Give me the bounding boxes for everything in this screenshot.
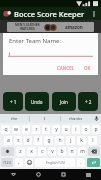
button[interactable]: f	[34, 136, 42, 145]
staticText: amazon	[65, 24, 83, 30]
button[interactable]: o	[82, 125, 90, 134]
button[interactable]: i	[72, 125, 80, 134]
staticText: .	[80, 159, 82, 166]
staticText: k	[80, 137, 83, 144]
staticText: t	[45, 126, 47, 133]
button[interactable]: y	[52, 125, 60, 134]
button[interactable]: s	[14, 136, 22, 145]
button[interactable]: n	[68, 147, 76, 156]
staticText: English (US)	[46, 160, 65, 165]
button[interactable]: thanks	[61, 114, 91, 123]
staticText: MEN'S LEATHER	[15, 23, 40, 27]
button[interactable]: e	[22, 125, 30, 134]
button[interactable]: Advertisement	[0, 20, 101, 33]
staticText: ?123	[3, 160, 11, 165]
button[interactable]: ,	[15, 158, 23, 167]
button[interactable]: OK	[79, 63, 96, 73]
button[interactable]: .	[77, 158, 85, 167]
button[interactable]: w	[12, 125, 20, 134]
staticText: j	[70, 137, 72, 144]
button[interactable]: d	[24, 136, 32, 145]
button[interactable]: + 2	[78, 92, 98, 111]
staticText: + 2	[85, 99, 92, 105]
button[interactable]: Keyboard	[76, 169, 101, 180]
staticText: z	[19, 148, 22, 155]
staticText: u	[64, 126, 68, 133]
staticText: l	[92, 137, 94, 144]
staticText: thanks	[69, 116, 83, 122]
staticText: w	[14, 126, 18, 133]
button[interactable]: c	[38, 147, 46, 156]
button[interactable]: j	[66, 136, 75, 145]
staticText: s	[17, 137, 20, 144]
staticText: o	[84, 126, 88, 133]
button[interactable]: Join	[52, 92, 76, 111]
staticText: CANCEL	[57, 65, 75, 71]
staticText: + 1	[10, 99, 17, 105]
button[interactable]: ?123	[1, 158, 13, 167]
button[interactable]: Emoji	[25, 158, 33, 167]
staticText: v	[51, 148, 54, 155]
staticText: d	[26, 137, 30, 144]
staticText: m	[80, 148, 85, 155]
button[interactable]: More options	[87, 7, 100, 20]
button[interactable]: Home	[26, 169, 51, 180]
staticText: i	[75, 126, 77, 133]
staticText: e	[25, 126, 28, 133]
staticText: ,	[18, 159, 20, 166]
staticText: f	[37, 137, 39, 144]
staticText: h	[58, 137, 62, 144]
button[interactable]: t	[42, 125, 50, 134]
button[interactable]	[8, 50, 93, 57]
button[interactable]: x	[27, 147, 36, 156]
staticText: Bocce Score Keeper	[14, 9, 85, 19]
button[interactable]: v	[48, 147, 56, 156]
button[interactable]: g	[44, 136, 53, 145]
staticText: b	[60, 148, 64, 155]
staticText: a	[7, 137, 10, 144]
button[interactable]: CANCEL	[53, 63, 79, 73]
button[interactable]: u	[62, 125, 70, 134]
button[interactable]: Backspace	[88, 147, 100, 156]
button[interactable]: Space	[35, 158, 75, 167]
button[interactable]: p	[92, 125, 100, 134]
button[interactable]: l	[88, 136, 97, 145]
staticText: Enter Team Name:	[9, 37, 61, 45]
staticText: n	[70, 148, 74, 155]
button[interactable]: Undo	[25, 92, 49, 111]
button[interactable]: Enter	[87, 158, 100, 167]
button[interactable]: the	[0, 114, 29, 123]
button[interactable]: a	[4, 136, 12, 145]
button[interactable]: Recents	[51, 169, 76, 180]
button[interactable]: z	[16, 147, 25, 156]
button[interactable]: Back	[0, 169, 26, 180]
button[interactable]: Voice input	[91, 114, 101, 123]
staticText: r	[35, 126, 38, 133]
button[interactable]: I	[30, 114, 60, 123]
staticText: p	[94, 126, 98, 133]
staticText: Undo	[31, 99, 43, 105]
button[interactable]: k	[77, 136, 86, 145]
button[interactable]: h	[55, 136, 64, 145]
staticText: WATCHES	[20, 27, 35, 31]
staticText: OK	[84, 65, 91, 71]
button[interactable]: b	[58, 147, 66, 156]
button[interactable]: q	[1, 125, 10, 134]
button[interactable]: Shift	[1, 147, 14, 156]
button[interactable]: + 1	[3, 92, 23, 111]
staticText: the	[11, 116, 18, 122]
button[interactable]: m	[78, 147, 86, 156]
staticText: g	[47, 137, 51, 144]
staticText: q	[4, 126, 8, 133]
staticText: x	[30, 148, 33, 155]
staticText: I	[44, 116, 46, 122]
staticText: c	[41, 148, 44, 155]
staticText: Join	[60, 99, 68, 105]
staticText: y	[55, 126, 58, 133]
button[interactable]: r	[32, 125, 40, 134]
